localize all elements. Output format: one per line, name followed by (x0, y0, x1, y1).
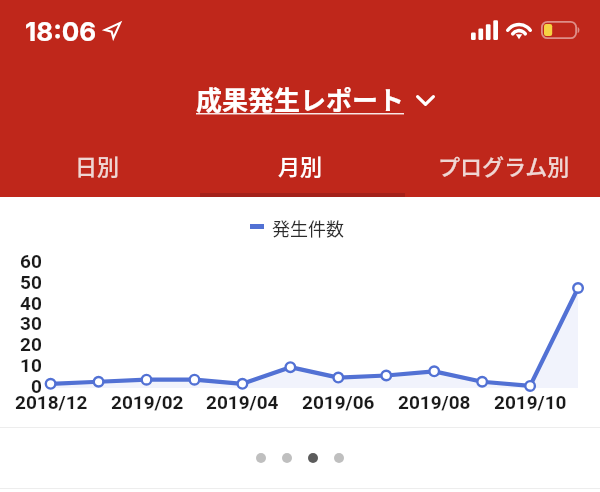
staticText: 0 (31, 375, 42, 397)
staticText: 2019/04 (206, 391, 279, 413)
staticText: 50 (20, 271, 42, 293)
button[interactable]: プログラム別 (400, 140, 600, 197)
button[interactable]: 日別 (0, 140, 200, 197)
button[interactable]: Page 2 (282, 453, 292, 463)
button[interactable]: 月別 (200, 140, 400, 197)
staticText: 20 (20, 333, 42, 355)
staticText: 2018/12 (15, 391, 88, 413)
button[interactable]: 成果発生レポート (0, 76, 600, 122)
staticText: 2019/06 (302, 391, 375, 413)
staticText: プログラム別 (438, 149, 570, 181)
staticText: 60 (20, 250, 42, 272)
staticText: 30 (20, 312, 42, 334)
button[interactable]: Page 1 (256, 453, 266, 463)
staticText: 2019/08 (398, 391, 471, 413)
staticText: 18:06 (25, 16, 97, 47)
staticText: 2019/02 (111, 391, 184, 413)
staticText: 日別 (75, 149, 120, 181)
button[interactable]: Page 4 (334, 453, 344, 463)
staticText: 成果発生レポート (196, 80, 405, 118)
staticText: 月別 (278, 149, 323, 181)
staticText: 2019/10 (494, 391, 567, 413)
staticText: 発生件数 (272, 215, 344, 241)
staticText: 10 (20, 354, 42, 376)
staticText: 40 (20, 292, 42, 314)
button[interactable]: Page 3 (308, 453, 318, 463)
